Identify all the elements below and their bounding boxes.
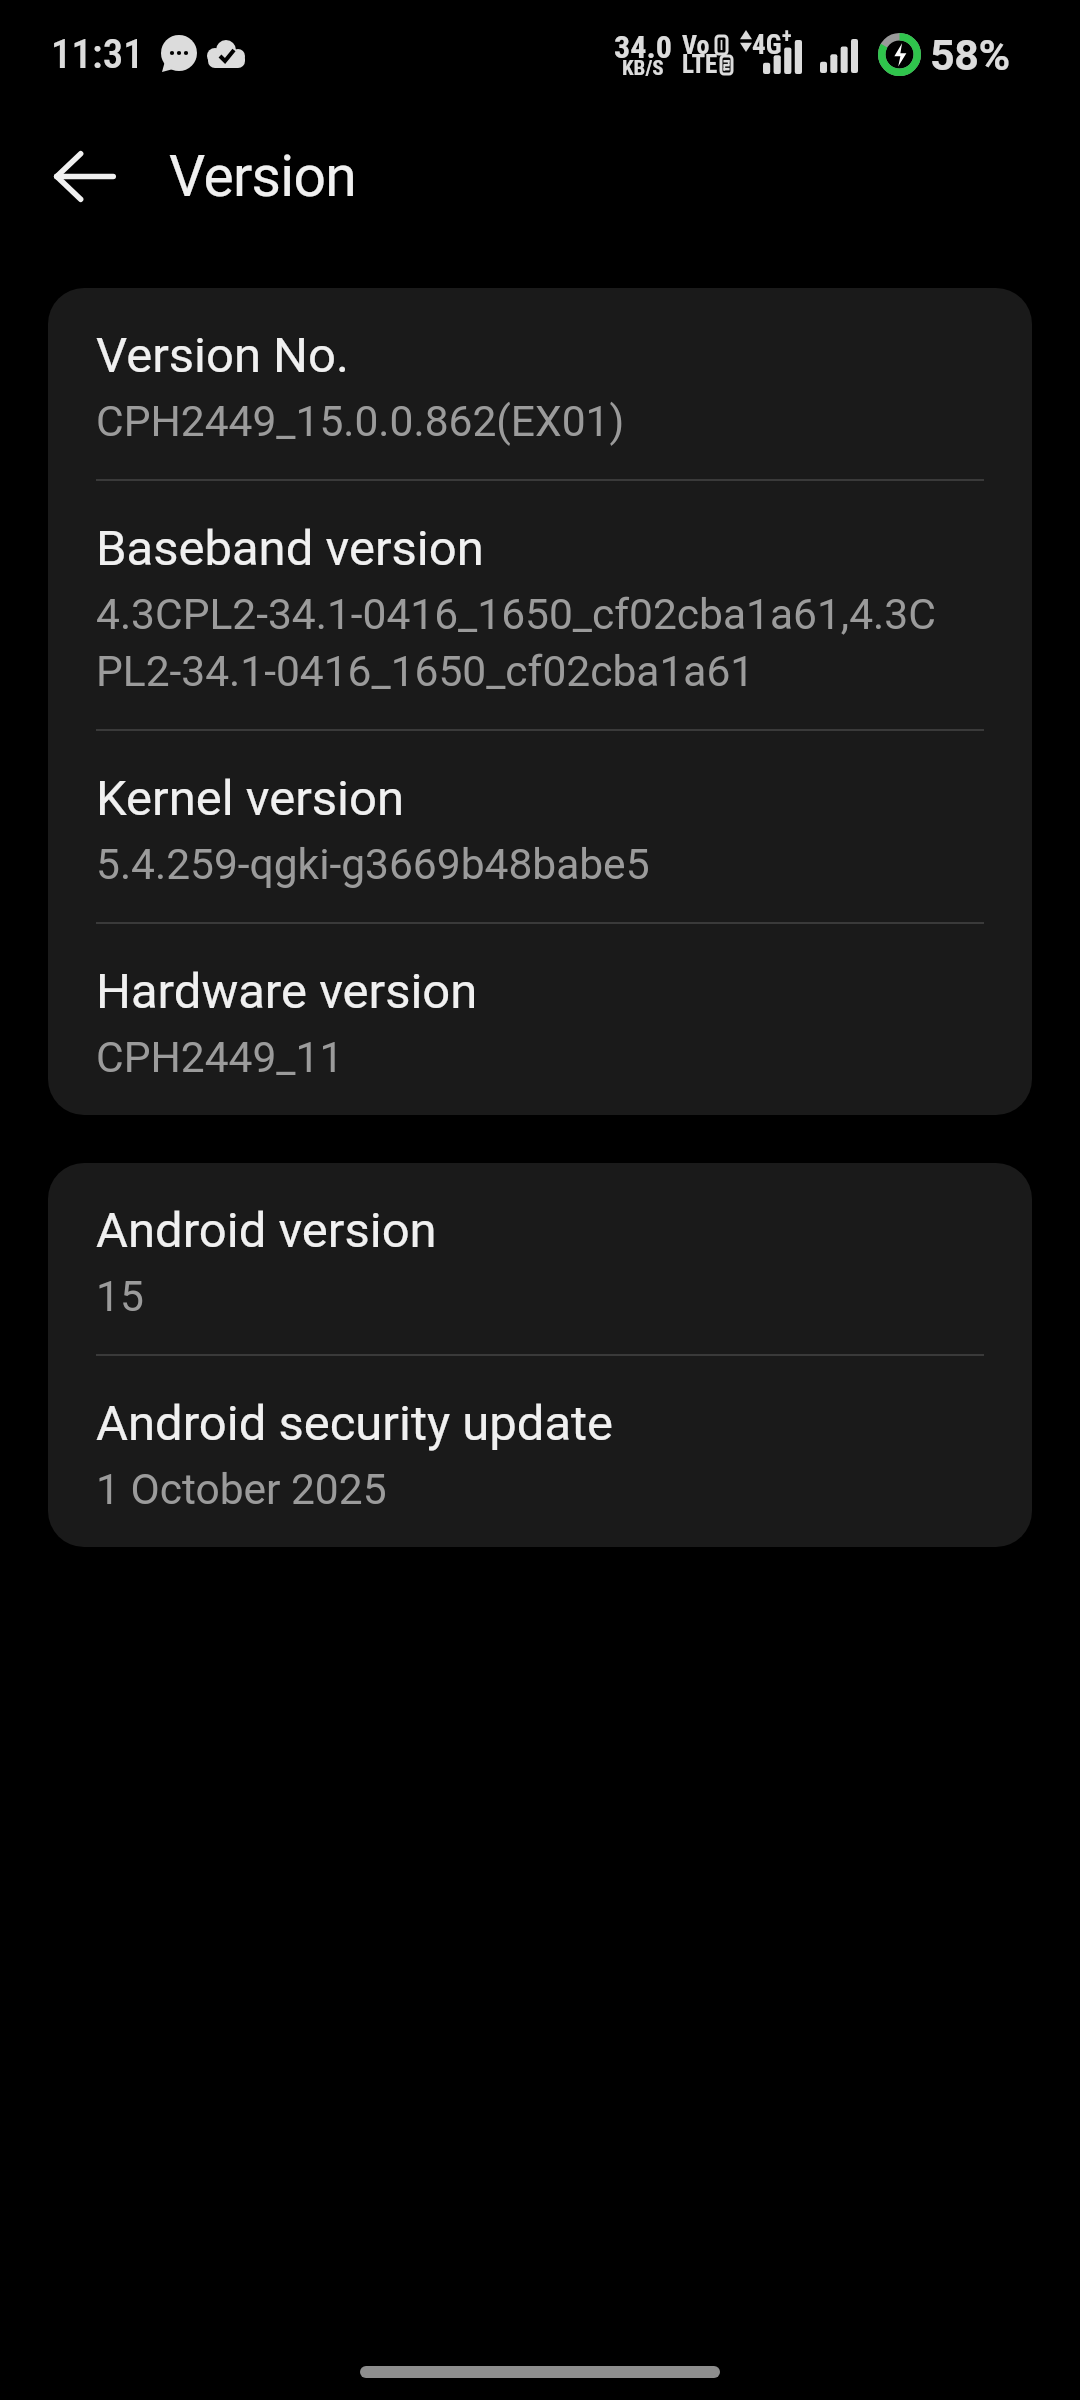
staticText: CPH2449_11 [96, 1027, 946, 1084]
button[interactable]: Version No. [48, 288, 1032, 481]
staticText: Version No. [96, 326, 349, 384]
staticText: Android version [96, 1201, 437, 1259]
staticText: CPH2449_15.0.0.862(EX01) [96, 391, 946, 448]
staticText: 4G [752, 29, 782, 61]
staticText: Kernel version [96, 769, 405, 827]
staticText: 1 October 2025 [96, 1459, 946, 1516]
button[interactable]: Android version [48, 1163, 1032, 1356]
staticText: 34.0 [614, 28, 672, 66]
button[interactable]: Baseband version [48, 481, 1032, 731]
button[interactable]: Hardware version [48, 924, 1032, 1115]
staticText: Baseband version [96, 519, 484, 577]
staticText: LTE [682, 50, 718, 79]
button[interactable]: Kernel version [48, 731, 1032, 924]
staticText: Version [169, 143, 357, 210]
staticText: Android security update [96, 1394, 614, 1452]
staticText: Vo [682, 30, 710, 60]
staticText: 11:31 [51, 30, 144, 78]
staticText: 15 [96, 1266, 946, 1323]
staticText: 4.3CPL2-34.1-0416_1650_cf02cba1a61,4.3CP… [96, 584, 946, 698]
button[interactable]: Android security update [48, 1356, 1032, 1547]
staticText: 5.4.259-qgki-g3669b48babe5 [96, 834, 946, 891]
staticText: KB/S [622, 56, 664, 81]
staticText: Hardware version [96, 962, 478, 1020]
staticText: 58% [930, 30, 1010, 80]
button[interactable]: Back [34, 126, 135, 227]
staticText: + [782, 25, 792, 47]
